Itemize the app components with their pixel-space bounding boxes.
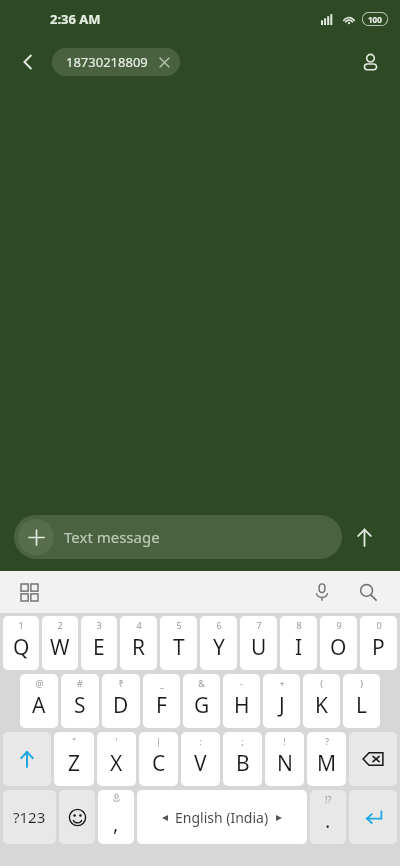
staticText: Y bbox=[213, 633, 225, 662]
button[interactable]: ; bbox=[223, 732, 262, 786]
staticText: 18730218809 bbox=[66, 53, 148, 71]
button[interactable]: - bbox=[223, 674, 260, 728]
button[interactable]: ' bbox=[97, 732, 136, 786]
staticText: V bbox=[194, 749, 207, 778]
button[interactable]: 18730218809 bbox=[52, 48, 180, 76]
button[interactable]: Comma bbox=[98, 790, 134, 844]
button[interactable]: Shift bbox=[3, 732, 51, 786]
staticText: _ bbox=[160, 677, 164, 689]
button[interactable]: " bbox=[54, 732, 94, 786]
button[interactable]: @ bbox=[20, 674, 58, 728]
staticText: G bbox=[194, 691, 210, 720]
staticText: 4 bbox=[136, 619, 142, 631]
staticText: E bbox=[93, 633, 105, 662]
staticText: X bbox=[110, 749, 123, 778]
staticText: !? bbox=[325, 793, 332, 805]
staticText: P bbox=[372, 633, 385, 662]
staticText: S bbox=[74, 691, 86, 720]
staticText: : bbox=[199, 735, 202, 747]
button[interactable]: 9 bbox=[320, 616, 357, 670]
button[interactable]: 3 bbox=[81, 616, 117, 670]
button[interactable]: ( bbox=[303, 674, 340, 728]
button[interactable]: # bbox=[61, 674, 99, 728]
button[interactable]: ! bbox=[265, 732, 304, 786]
button[interactable]: Send bbox=[342, 515, 386, 559]
staticText: @ bbox=[35, 677, 44, 689]
staticText: 1 bbox=[18, 619, 24, 631]
staticText: , bbox=[113, 810, 119, 837]
staticText: B bbox=[236, 749, 250, 778]
staticText: H bbox=[234, 691, 250, 720]
button[interactable]: English (India) bbox=[137, 790, 307, 844]
button[interactable]: 1 bbox=[3, 616, 39, 670]
button[interactable]: ?123 bbox=[3, 790, 56, 844]
staticText: 6 bbox=[216, 619, 222, 631]
staticText: M bbox=[317, 749, 337, 778]
staticText: 7 bbox=[256, 619, 262, 631]
staticText: - bbox=[240, 677, 243, 689]
staticText: N bbox=[277, 749, 293, 778]
button[interactable]: _ bbox=[143, 674, 180, 728]
staticText: ₹ bbox=[118, 677, 124, 689]
button[interactable]: & bbox=[183, 674, 220, 728]
staticText: | bbox=[156, 735, 161, 747]
staticText: & bbox=[198, 677, 205, 689]
staticText: 0 bbox=[376, 619, 382, 631]
button[interactable]: Backspace bbox=[349, 732, 397, 786]
staticText: English (India) bbox=[175, 808, 269, 827]
button[interactable]: + bbox=[263, 674, 300, 728]
staticText: Q bbox=[13, 633, 30, 662]
staticText: C bbox=[152, 749, 166, 778]
staticText: T bbox=[173, 633, 185, 662]
staticText: 3 bbox=[96, 619, 102, 631]
button[interactable]: Emoji bbox=[59, 790, 95, 844]
button[interactable]: 2 bbox=[42, 616, 78, 670]
button[interactable]: Voice input bbox=[304, 574, 340, 610]
staticText: R bbox=[132, 633, 146, 662]
button[interactable]: Keyboard options bbox=[12, 575, 46, 609]
staticText: ( bbox=[320, 677, 323, 689]
staticText: 8 bbox=[296, 619, 302, 631]
staticText: ! bbox=[283, 735, 286, 747]
button[interactable]: 6 bbox=[200, 616, 237, 670]
staticText: W bbox=[50, 633, 70, 662]
staticText: I bbox=[295, 633, 303, 662]
button[interactable]: 8 bbox=[280, 616, 317, 670]
button[interactable]: : bbox=[181, 732, 220, 786]
button[interactable]: ) bbox=[343, 674, 380, 728]
button[interactable]: Back bbox=[8, 42, 48, 82]
staticText: A bbox=[32, 691, 46, 720]
staticText: ) bbox=[360, 677, 363, 689]
button[interactable]: Add attachment bbox=[14, 515, 342, 559]
staticText: 5 bbox=[176, 619, 182, 631]
button[interactable]: ₹ bbox=[102, 674, 140, 728]
button[interactable]: ? bbox=[307, 732, 346, 786]
button[interactable]: 4 bbox=[120, 616, 157, 670]
button[interactable]: Remove recipient bbox=[156, 54, 172, 70]
staticText: 2 bbox=[57, 619, 63, 631]
button[interactable]: Period bbox=[310, 790, 346, 844]
staticText: U bbox=[251, 633, 267, 662]
staticText: ; bbox=[241, 735, 244, 747]
staticText: J bbox=[279, 691, 285, 720]
staticText: ' bbox=[115, 735, 118, 747]
button[interactable]: Enter bbox=[349, 790, 397, 844]
staticText: ?123 bbox=[13, 807, 46, 827]
staticText: " bbox=[72, 735, 76, 747]
staticText: L bbox=[356, 691, 368, 720]
staticText: F bbox=[156, 691, 167, 720]
button[interactable]: 0 bbox=[360, 616, 397, 670]
button[interactable]: | bbox=[139, 732, 178, 786]
button[interactable]: Add attachment bbox=[18, 519, 54, 555]
staticText: D bbox=[113, 691, 129, 720]
staticText: 100 bbox=[368, 14, 382, 25]
button[interactable]: 7 bbox=[240, 616, 277, 670]
button[interactable]: Search bbox=[350, 574, 386, 610]
button[interactable]: Contacts bbox=[350, 42, 390, 82]
staticText: + bbox=[279, 677, 285, 689]
staticText: 9 bbox=[336, 619, 342, 631]
staticText: Text message bbox=[64, 527, 160, 547]
staticText: ? bbox=[325, 735, 329, 747]
staticText: O bbox=[330, 633, 347, 662]
button[interactable]: 5 bbox=[160, 616, 197, 670]
